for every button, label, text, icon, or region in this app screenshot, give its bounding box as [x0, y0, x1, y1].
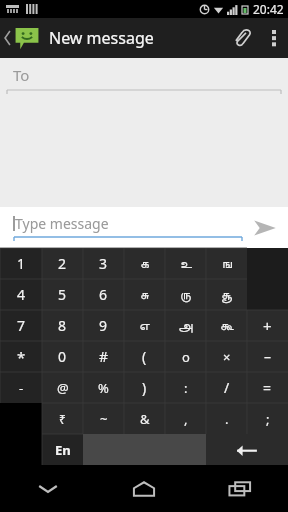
button[interactable]: × — [206, 341, 247, 372]
button[interactable]: எ — [124, 310, 165, 341]
staticText: 0 — [58, 347, 67, 366]
button[interactable]: – — [247, 341, 288, 372]
button[interactable]: . — [206, 403, 247, 434]
button[interactable]: & — [124, 403, 165, 434]
staticText: & — [140, 410, 150, 428]
button[interactable]: ரு — [165, 279, 206, 310]
button[interactable]: க — [124, 248, 165, 279]
staticText: . — [225, 410, 229, 428]
staticText: கூ — [220, 319, 234, 333]
button[interactable]: % — [83, 372, 124, 403]
button[interactable]: ~ — [83, 403, 124, 434]
staticText: எ — [139, 319, 150, 333]
staticText: * — [17, 347, 26, 367]
staticText: To — [13, 65, 30, 85]
button[interactable]: @ — [42, 372, 83, 403]
staticText: 5 — [58, 285, 67, 304]
button[interactable]: + — [247, 310, 288, 341]
staticText: சூ — [221, 288, 232, 302]
button[interactable]: உ — [165, 248, 206, 279]
button[interactable]: Attach — [224, 18, 260, 58]
staticText: ( — [142, 347, 147, 366]
staticText: - — [19, 379, 24, 397]
button[interactable]: # — [83, 341, 124, 372]
staticText: 1 — [17, 254, 26, 273]
staticText: + — [263, 316, 272, 336]
button[interactable]: 3 — [83, 248, 124, 279]
button[interactable]: 0 — [42, 341, 83, 372]
staticText: o — [182, 348, 190, 366]
staticText: 6 — [99, 285, 108, 304]
staticText: 2 — [58, 254, 67, 273]
staticText: க — [140, 257, 149, 271]
button[interactable]: ; — [247, 403, 288, 434]
button[interactable]: / — [206, 372, 247, 403]
button[interactable]: Hide keyboard — [0, 465, 96, 512]
button[interactable]: ) — [124, 372, 165, 403]
staticText: சு — [140, 288, 149, 302]
button[interactable]: ₹ — [42, 403, 83, 434]
button[interactable]: , — [165, 403, 206, 434]
button[interactable]: ( — [124, 341, 165, 372]
staticText: # — [99, 347, 109, 366]
staticText: ~ — [100, 410, 108, 428]
staticText: ₹ — [59, 411, 66, 427]
button[interactable]: 2 — [42, 248, 83, 279]
staticText: ங — [222, 257, 232, 271]
button[interactable]: 7 — [0, 310, 42, 341]
staticText: ; — [266, 410, 270, 428]
staticText: = — [263, 378, 272, 397]
button[interactable]: o — [165, 341, 206, 372]
staticText: அ — [178, 319, 193, 333]
button[interactable]: Type message — [14, 214, 242, 242]
button[interactable]: சு — [124, 279, 165, 310]
button[interactable]: Home — [96, 465, 192, 512]
staticText: , — [184, 410, 188, 428]
staticText: 20:42 — [253, 1, 284, 17]
button[interactable]: 1 — [0, 248, 42, 279]
button[interactable]: 5 — [42, 279, 83, 310]
button[interactable]: En — [42, 434, 83, 465]
button[interactable]: 8 — [42, 310, 83, 341]
staticText: New message — [49, 27, 154, 49]
staticText: : — [184, 379, 188, 397]
button[interactable]: ங — [206, 248, 247, 279]
staticText: 9 — [99, 316, 108, 335]
staticText: – — [264, 347, 271, 366]
button[interactable]: 6 — [83, 279, 124, 310]
staticText: En — [55, 441, 71, 459]
button[interactable]: Navigate up — [0, 25, 42, 51]
staticText: ) — [142, 378, 147, 397]
staticText: @ — [57, 379, 69, 397]
staticText: × — [223, 348, 231, 366]
button[interactable]: - — [0, 372, 42, 403]
staticText: 3 — [99, 254, 108, 273]
staticText: Type message — [15, 214, 109, 233]
button[interactable]: 9 — [83, 310, 124, 341]
button[interactable]: Enter — [206, 434, 288, 465]
staticText: 7 — [17, 316, 26, 335]
button[interactable]: அ — [165, 310, 206, 341]
staticText: 4 — [17, 285, 26, 304]
button[interactable]: சூ — [206, 279, 247, 310]
staticText: / — [224, 378, 230, 397]
button[interactable]: 4 — [0, 279, 42, 310]
staticText: உ — [180, 257, 192, 271]
button[interactable]: Recent apps — [192, 465, 288, 512]
button[interactable]: = — [247, 372, 288, 403]
staticText: ரு — [180, 288, 191, 302]
staticText: 8 — [58, 316, 67, 335]
button[interactable]: To — [7, 65, 281, 96]
button[interactable]: * — [0, 341, 42, 372]
button[interactable]: More options — [260, 18, 288, 58]
button[interactable]: : — [165, 372, 206, 403]
button[interactable]: Send — [242, 207, 288, 248]
staticText: % — [98, 379, 109, 397]
button[interactable]: கூ — [206, 310, 247, 341]
